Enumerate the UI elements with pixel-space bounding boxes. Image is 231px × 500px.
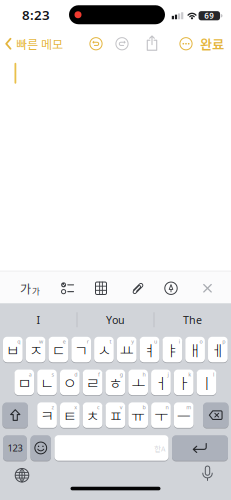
staticText: ㅌ: [63, 404, 77, 426]
button[interactable]: ㅅ: [94, 337, 114, 362]
staticText: b: [143, 404, 146, 411]
button[interactable]: [2, 402, 28, 428]
staticText: h: [143, 371, 146, 378]
button[interactable]: [95, 281, 107, 295]
staticText: u: [154, 338, 157, 345]
button[interactable]: You: [80, 307, 150, 333]
staticText: ㅎ: [108, 371, 122, 393]
staticText: v: [120, 404, 123, 411]
staticText: o: [199, 338, 202, 345]
button[interactable]: [202, 465, 213, 481]
staticText: ㅋ: [40, 404, 54, 426]
staticText: ㅗ: [131, 371, 145, 393]
button[interactable]: [164, 281, 178, 295]
button[interactable]: ㅕ: [140, 337, 159, 362]
staticText: 가: [32, 284, 40, 297]
button[interactable]: 가: [20, 280, 40, 297]
button[interactable]: ㅁ: [14, 370, 34, 395]
staticText: 69: [204, 10, 214, 21]
button[interactable]: [14, 468, 29, 483]
staticText: ㅡ: [177, 404, 191, 426]
button[interactable]: ㅡ: [174, 402, 194, 428]
staticText: 빠른 메모: [16, 35, 63, 52]
button[interactable]: 123: [3, 435, 27, 461]
button[interactable]: ㅎ: [105, 370, 125, 395]
button[interactable]: ㄷ: [49, 337, 68, 362]
button[interactable]: ㅜ: [151, 402, 171, 428]
button[interactable]: ㄴ: [37, 370, 57, 395]
button[interactable]: I: [3, 307, 73, 333]
button[interactable]: ㅠ: [128, 402, 148, 428]
button[interactable]: [60, 281, 74, 295]
button[interactable]: ㅋ: [37, 402, 57, 428]
staticText: f: [98, 371, 100, 378]
staticText: ㅐ: [188, 338, 202, 361]
staticText: n: [165, 404, 168, 411]
button[interactable]: ㅣ: [197, 370, 216, 395]
button[interactable]: ㅑ: [162, 337, 182, 362]
button[interactable]: ㅌ: [60, 402, 80, 428]
button[interactable]: ㅍ: [105, 402, 125, 428]
staticText: l: [213, 371, 214, 378]
staticText: ㅂ: [6, 338, 20, 361]
staticText: ㅓ: [154, 371, 168, 393]
staticText: t: [109, 338, 111, 345]
staticText: ㅔ: [211, 338, 225, 361]
button[interactable]: ㅔ: [208, 337, 228, 362]
staticText: g: [120, 371, 123, 378]
button[interactable]: [130, 280, 146, 296]
button[interactable]: 빠른 메모: [5, 35, 63, 52]
staticText: ㅛ: [120, 338, 134, 361]
staticText: I: [36, 313, 40, 327]
staticText: The: [183, 313, 202, 327]
button[interactable]: ㅛ: [117, 337, 137, 362]
button[interactable]: [203, 402, 228, 428]
button[interactable]: [30, 435, 51, 461]
button[interactable]: [115, 37, 129, 51]
staticText: 한A: [154, 443, 165, 453]
button[interactable]: [89, 37, 103, 51]
staticText: ㄱ: [74, 338, 88, 361]
staticText: ㅑ: [165, 338, 179, 361]
button[interactable]: ㅂ: [3, 337, 23, 362]
staticText: ㅁ: [17, 371, 31, 393]
staticText: ㅊ: [86, 404, 100, 426]
staticText: ㅕ: [142, 338, 156, 361]
staticText: a: [29, 371, 32, 378]
staticText: d: [74, 371, 77, 378]
staticText: ㅍ: [108, 404, 122, 426]
staticText: ㄷ: [51, 338, 65, 361]
staticText: 가: [20, 280, 31, 297]
button[interactable]: 완료: [200, 34, 224, 53]
button[interactable]: ㅈ: [26, 337, 45, 362]
button[interactable]: [145, 35, 159, 51]
button[interactable]: ㅓ: [151, 370, 171, 395]
staticText: ㅠ: [131, 404, 145, 426]
staticText: c: [97, 404, 100, 411]
button[interactable]: ㅏ: [174, 370, 194, 395]
staticText: 8:23: [22, 6, 50, 24]
staticText: ㅜ: [154, 404, 168, 426]
staticText: e: [63, 338, 66, 345]
staticText: 완료: [200, 34, 224, 53]
button[interactable]: ㅇ: [60, 370, 80, 395]
button[interactable]: ㅊ: [83, 402, 102, 428]
staticText: z: [51, 404, 54, 411]
button[interactable]: 한A: [54, 435, 168, 461]
button[interactable]: ㅗ: [128, 370, 148, 395]
button[interactable]: The: [157, 307, 227, 333]
button[interactable]: ㅐ: [185, 337, 205, 362]
staticText: You: [106, 313, 125, 327]
button[interactable]: ㄱ: [71, 337, 91, 362]
button[interactable]: [203, 284, 212, 293]
staticText: w: [39, 338, 43, 345]
staticText: k: [188, 371, 191, 378]
staticText: x: [74, 404, 77, 411]
staticText: ㅇ: [63, 371, 77, 393]
button[interactable]: [172, 435, 228, 461]
staticText: ㄹ: [86, 371, 100, 393]
button[interactable]: ㄹ: [83, 370, 102, 395]
staticText: y: [131, 338, 134, 345]
button[interactable]: [179, 37, 193, 51]
staticText: r: [87, 338, 89, 345]
